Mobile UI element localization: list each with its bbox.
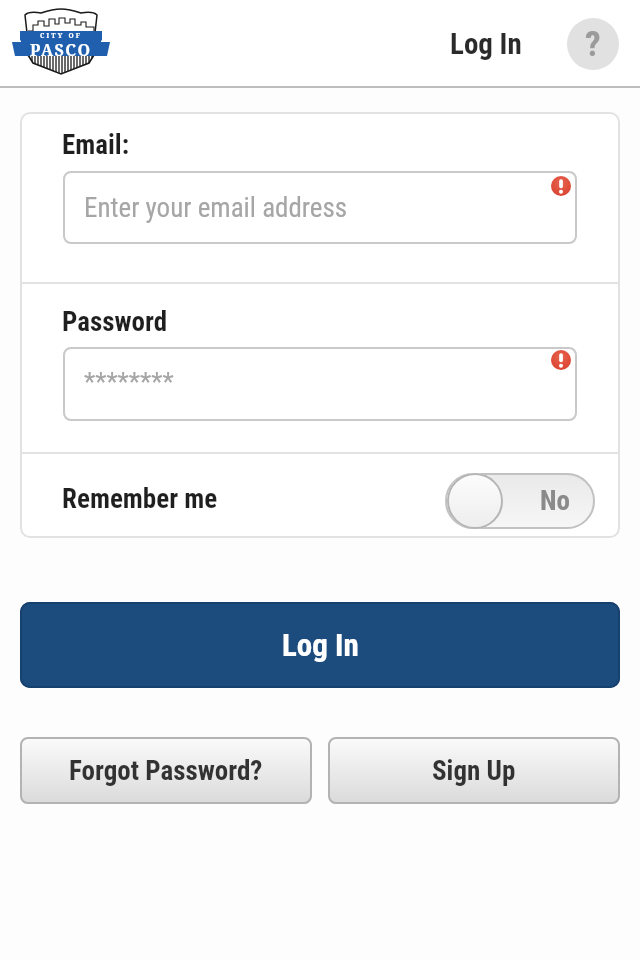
button[interactable]: Forgot Password? (20, 737, 312, 804)
staticText: Email: (62, 129, 130, 161)
button[interactable]: Sign Up (328, 737, 620, 804)
staticText: ? (585, 24, 601, 65)
button[interactable]: No (445, 473, 595, 529)
staticText: Forgot Password? (69, 755, 263, 787)
button[interactable]: ******** (63, 347, 577, 421)
button[interactable]: ? (567, 18, 619, 70)
staticText: CITY OF (40, 31, 82, 40)
staticText: PASCO (30, 39, 92, 61)
staticText: Log In (450, 27, 522, 61)
button[interactable]: Enter your email address (63, 171, 577, 244)
button[interactable]: Log In (20, 602, 620, 688)
staticText: Password (62, 306, 168, 338)
staticText: Remember me (62, 483, 218, 515)
staticText: Sign Up (432, 755, 516, 787)
staticText: No (540, 485, 570, 517)
staticText: Enter your email address (84, 192, 348, 224)
staticText: ******** (84, 367, 174, 397)
staticText: Log In (282, 627, 359, 663)
